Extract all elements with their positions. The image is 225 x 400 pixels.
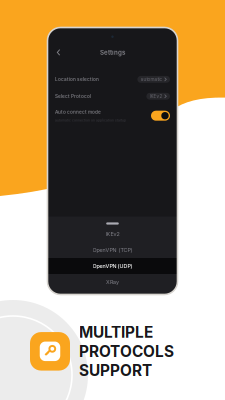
- staticText: OpenVPN (UDP): [92, 263, 132, 269]
- button[interactable]: IKEv2: [47, 226, 177, 242]
- button[interactable]: OpenVPN (TCP): [47, 242, 177, 258]
- button[interactable]: Select Protocol: [47, 88, 177, 105]
- staticText: Auto connect mode: [55, 109, 101, 115]
- staticText: Location selection: [55, 76, 99, 82]
- staticText: OpenVPN (TCP): [92, 247, 132, 253]
- staticText: Select Protocol: [55, 93, 91, 99]
- button[interactable]: Auto connect mode: [47, 105, 177, 127]
- staticText: IKEv2: [150, 93, 163, 99]
- button[interactable]: Back: [52, 46, 64, 58]
- button[interactable]: Location selection: [47, 71, 177, 88]
- button[interactable]: OpenVPN (UDP): [47, 258, 177, 274]
- staticText: PROTOCOLS: [79, 342, 174, 361]
- staticText: automatic connection on application star…: [55, 118, 126, 122]
- staticText: XRay: [106, 279, 119, 285]
- button[interactable]: XRay: [47, 274, 177, 290]
- staticText: SUPPORT: [79, 361, 152, 380]
- staticText: MULTIPLE: [79, 323, 153, 342]
- staticText: automatic: [141, 77, 163, 82]
- staticText: Settings: [100, 49, 125, 56]
- staticText: IKEv2: [105, 231, 119, 237]
